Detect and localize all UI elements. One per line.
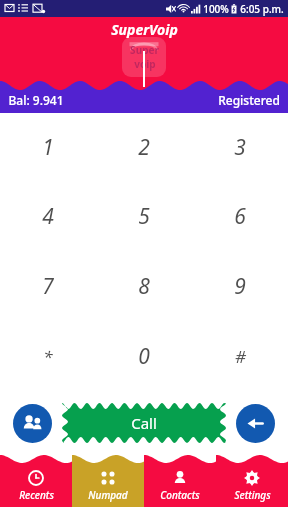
button[interactable]: Settings: [216, 455, 288, 507]
staticText: 8: [138, 272, 150, 301]
button[interactable]: 7: [0, 251, 96, 321]
button[interactable]: 8: [96, 251, 192, 321]
button[interactable]: #: [192, 321, 288, 391]
button[interactable]: 5: [96, 182, 192, 251]
staticText: 7: [42, 272, 54, 301]
staticText: Contacts: [160, 488, 200, 502]
button[interactable]: 2: [96, 113, 192, 182]
staticText: 1: [42, 133, 54, 162]
staticText: Settings: [234, 488, 271, 502]
button[interactable]: Numpad: [72, 455, 144, 507]
button[interactable]: *: [0, 321, 96, 391]
staticText: Numpad: [88, 488, 128, 502]
staticText: Call: [131, 413, 157, 433]
staticText: voip: [134, 57, 156, 71]
button[interactable]: 9: [192, 251, 288, 321]
button[interactable]: 1: [0, 113, 96, 182]
staticText: 0: [138, 342, 150, 371]
staticText: #: [235, 345, 246, 368]
button[interactable]: 4: [0, 182, 96, 251]
button[interactable]: Recents: [0, 455, 72, 507]
button[interactable]: Backspace: [236, 404, 275, 443]
staticText: 6: [234, 202, 246, 231]
staticText: 4: [42, 202, 54, 231]
staticText: 6:05 p.m.: [240, 2, 284, 16]
staticText: Super: [130, 43, 159, 57]
staticText: Registered: [218, 92, 280, 108]
button[interactable]: Contacts: [144, 455, 216, 507]
button[interactable]: 6: [192, 182, 288, 251]
button[interactable]: Call: [62, 403, 226, 443]
staticText: 3: [234, 133, 246, 162]
staticText: 9: [234, 272, 246, 301]
staticText: 2: [138, 133, 150, 162]
staticText: 5: [138, 202, 150, 231]
staticText: 100%: [203, 2, 229, 16]
button[interactable]: 0: [96, 321, 192, 391]
staticText: SuperVoip: [111, 20, 178, 39]
staticText: Recents: [19, 488, 54, 502]
button[interactable]: Contacts: [13, 404, 52, 443]
staticText: Bal: 9.941: [8, 92, 64, 108]
staticText: *: [43, 345, 53, 368]
button[interactable]: 3: [192, 113, 288, 182]
